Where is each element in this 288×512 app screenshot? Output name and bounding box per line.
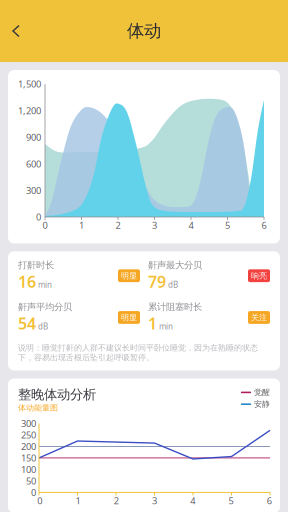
staticText: 600 [26, 158, 41, 170]
button[interactable]: 累计阻塞时长 [148, 301, 270, 334]
staticText: 0 [42, 219, 47, 231]
staticText: 关注 [251, 312, 267, 322]
staticText: 6 [261, 219, 266, 231]
button[interactable]: 打鼾时长 [18, 259, 140, 292]
staticText: 79 [148, 271, 166, 292]
staticText: 安静 [254, 399, 270, 409]
staticText: 体动能量图 [18, 403, 58, 413]
staticText: 鼾声平均分贝 [18, 301, 72, 313]
staticText: 体动 [127, 20, 161, 42]
staticText: dB [38, 321, 48, 332]
button[interactable]: 鼾声平均分贝 [18, 301, 140, 334]
staticText: 900 [26, 131, 41, 143]
staticText: 明显 [121, 312, 137, 322]
staticText: dB [168, 279, 178, 290]
staticText: 鼾声最大分贝 [148, 259, 202, 271]
staticText: 300 [26, 184, 41, 197]
staticText: 1,200 [18, 104, 41, 117]
staticText: 累计阻塞时长 [148, 301, 202, 313]
staticText: 1 [148, 313, 157, 334]
button[interactable]: Back [0, 13, 33, 48]
staticText: 0 [36, 211, 41, 223]
staticText: 打鼾时长 [18, 259, 54, 271]
staticText: 150 [21, 452, 36, 464]
staticText: 明显 [121, 271, 137, 281]
staticText: 3 [152, 494, 157, 507]
staticText: min [159, 321, 173, 332]
staticText: 响亮 [251, 271, 267, 281]
staticText: 2 [115, 219, 120, 231]
staticText: 300 [21, 417, 36, 430]
staticText: min [38, 279, 52, 290]
button[interactable]: 鼾声最大分贝 [148, 259, 270, 292]
staticText: 0 [37, 494, 42, 507]
staticText: 整晚体动分析 [18, 386, 96, 403]
staticText: 100 [21, 463, 36, 476]
staticText: 觉醒 [254, 387, 270, 397]
staticText: 3 [152, 219, 157, 231]
staticText: 54 [18, 313, 36, 334]
staticText: 1 [76, 494, 81, 507]
staticText: 16 [18, 271, 36, 292]
staticText: 50 [26, 475, 36, 487]
staticText: 200 [21, 440, 36, 453]
staticText: 5 [228, 494, 233, 507]
staticText: 250 [21, 429, 36, 441]
staticText: 5 [225, 219, 230, 231]
staticText: 0 [31, 486, 36, 499]
staticText: 6 [267, 494, 272, 507]
staticText: 1,500 [18, 78, 41, 90]
staticText: 2 [114, 494, 119, 507]
staticText: 说明：睡觉打鼾的人群不建议长时间平卧位睡觉，因为在熟睡的状态下，容易出现舌根后坠… [18, 343, 258, 362]
staticText: 1 [79, 219, 84, 231]
staticText: 4 [190, 494, 195, 507]
staticText: 4 [188, 219, 193, 231]
